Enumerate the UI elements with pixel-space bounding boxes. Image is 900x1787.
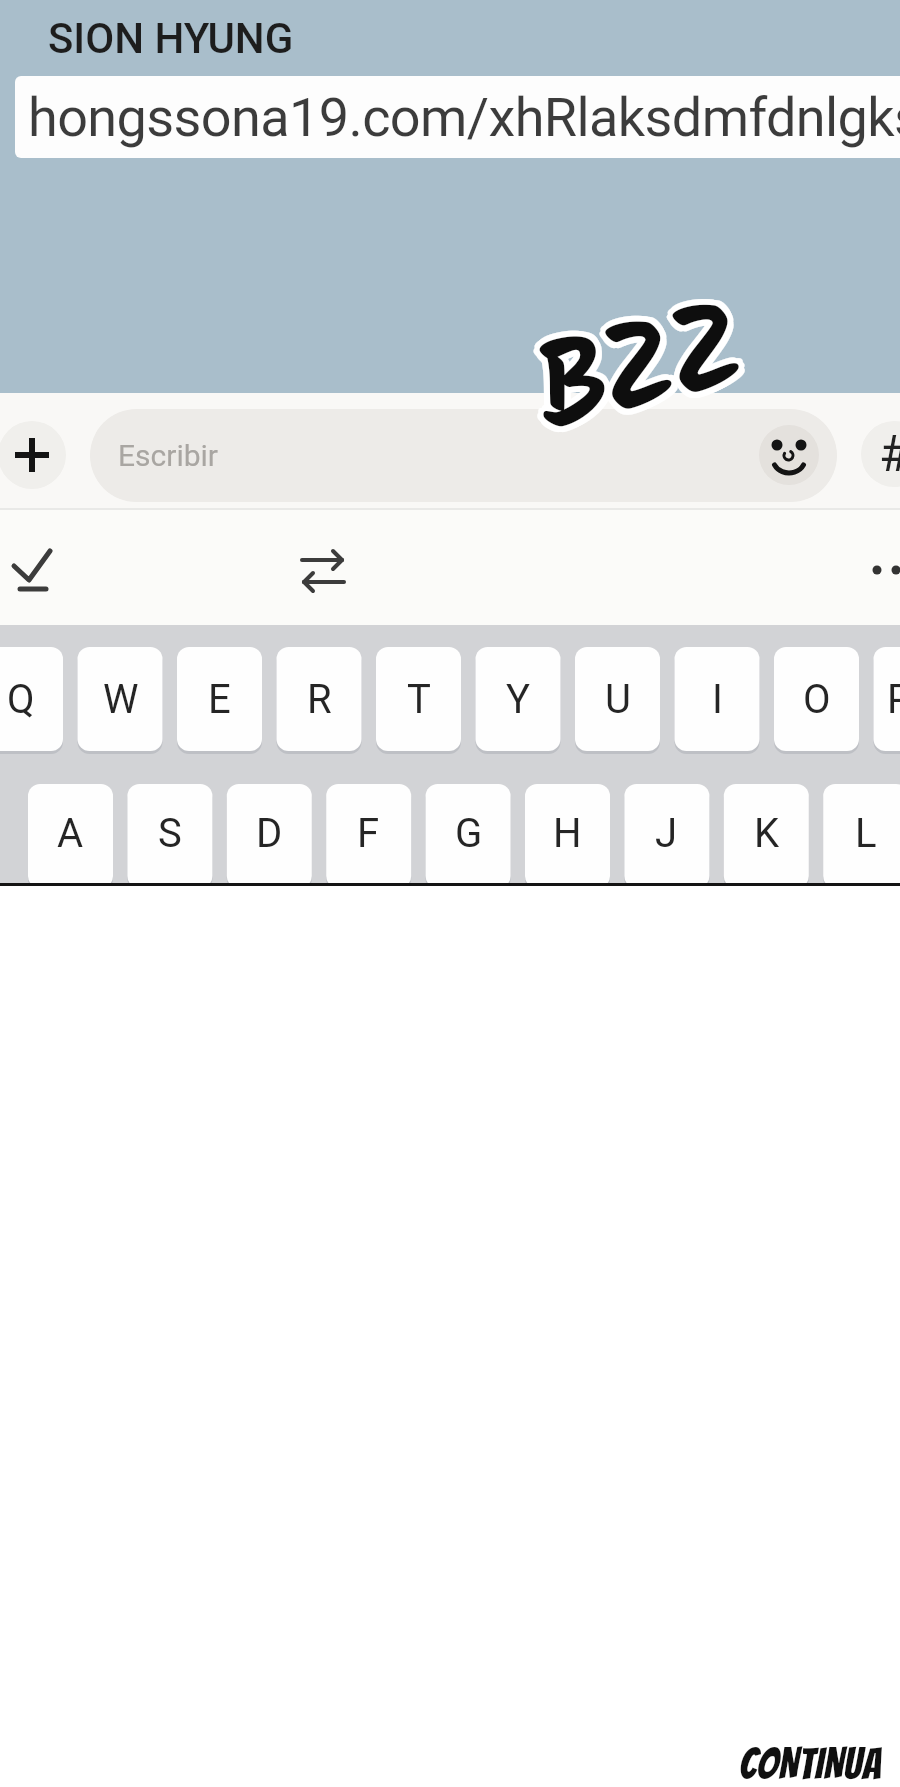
staticText: R — [307, 676, 332, 723]
staticText: L — [855, 810, 877, 857]
staticText: I — [712, 676, 723, 723]
staticText: BZZ — [515, 254, 760, 486]
button[interactable]: L — [823, 784, 900, 883]
button[interactable]: P — [874, 647, 900, 751]
button[interactable]: T — [376, 647, 461, 751]
staticText: BZZ — [511, 261, 756, 494]
button[interactable]: S — [127, 784, 212, 883]
staticText: J — [655, 810, 678, 857]
button[interactable]: K — [724, 784, 809, 883]
button[interactable]: A — [28, 784, 113, 883]
button[interactable]: I — [675, 647, 760, 751]
staticText: BZZ — [512, 257, 757, 489]
button[interactable]: # — [861, 421, 900, 487]
staticText: T — [407, 676, 431, 723]
button[interactable]: W — [78, 647, 163, 751]
staticText: E — [208, 676, 231, 723]
staticText: SION HYUNG — [48, 14, 294, 63]
staticText: hongssona19.com/xhRlaksdmfdnlgks — [28, 86, 900, 149]
staticText: S — [158, 810, 182, 857]
button[interactable]: F — [326, 784, 411, 883]
staticText: A — [57, 810, 84, 857]
staticText: Q — [7, 676, 35, 723]
staticText: BZZ — [522, 263, 768, 496]
staticText: # — [879, 425, 900, 484]
staticText: BZZ — [522, 258, 768, 491]
button[interactable]: U — [575, 647, 660, 751]
button[interactable] — [300, 548, 346, 594]
staticText: Y — [506, 676, 531, 723]
staticText: H — [553, 810, 582, 857]
staticText: U — [605, 676, 631, 723]
button[interactable]: hongssona19.com/xhRlaksdmfdnlgks — [15, 76, 900, 158]
staticText: P — [887, 676, 900, 723]
button[interactable]: O — [774, 647, 859, 751]
staticText: BZZ — [520, 255, 766, 487]
button[interactable] — [8, 542, 60, 598]
button[interactable]: H — [525, 784, 610, 883]
button[interactable]: Y — [476, 647, 561, 751]
button[interactable]: D — [227, 784, 312, 883]
staticText: BZZ — [516, 260, 762, 492]
staticText: D — [256, 810, 283, 857]
staticText: W — [103, 676, 139, 723]
button[interactable] — [868, 558, 900, 582]
button[interactable]: Escribir — [90, 409, 837, 502]
button[interactable]: J — [624, 784, 709, 883]
button[interactable]: E — [177, 647, 262, 751]
button[interactable]: G — [426, 784, 511, 883]
staticText: G — [455, 810, 483, 857]
staticText: CONTINUA — [739, 1741, 882, 1787]
staticText: BZZ — [514, 266, 759, 498]
staticText: K — [754, 810, 780, 857]
staticText: BZZ — [518, 266, 763, 498]
staticText: O — [803, 676, 831, 723]
staticText: Escribir — [118, 438, 219, 473]
button[interactable]: R — [277, 647, 362, 751]
staticText: F — [357, 810, 380, 857]
button[interactable]: Q — [0, 647, 63, 751]
button[interactable] — [0, 421, 66, 489]
